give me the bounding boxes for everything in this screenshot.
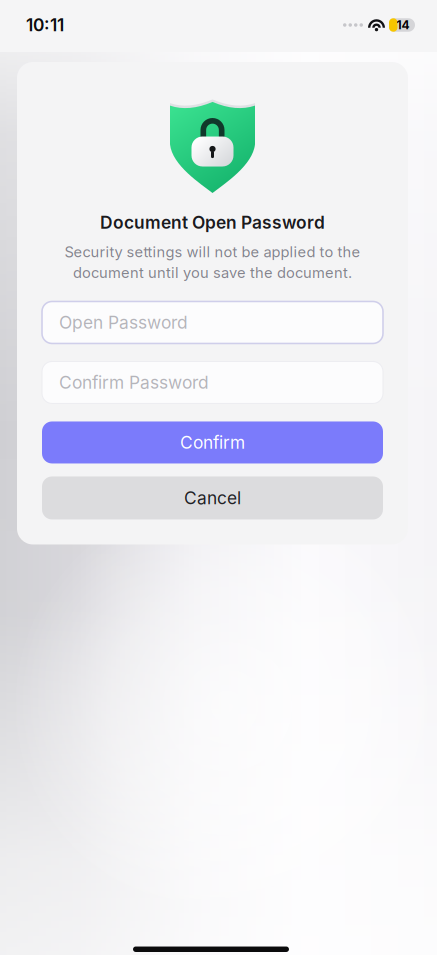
button[interactable]: Open Password <box>42 301 383 343</box>
staticText: Confirm Password <box>59 372 209 393</box>
staticText: Security settings will not be applied to… <box>64 243 360 261</box>
staticText: document until you save the document. <box>73 264 352 281</box>
staticText: 10:11 <box>26 14 64 35</box>
staticText: 14 <box>396 18 409 32</box>
staticText: Cancel <box>184 487 241 508</box>
staticText: Confirm <box>180 432 245 453</box>
button[interactable]: Confirm <box>42 421 383 463</box>
staticText: Document Open Password <box>100 212 325 233</box>
staticText: Open Password <box>59 312 188 333</box>
button[interactable]: Cancel <box>42 476 383 519</box>
button[interactable]: Confirm Password <box>42 361 383 403</box>
